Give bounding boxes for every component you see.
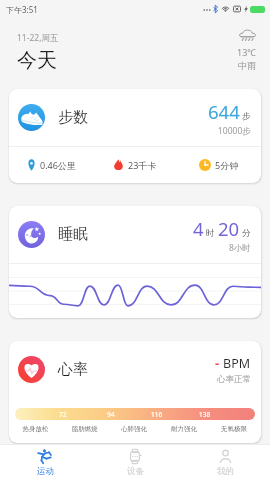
button[interactable]: 步数 [18, 89, 251, 146]
staticText: 今天 [17, 48, 57, 73]
staticText: 耐力强化 [159, 425, 209, 433]
button[interactable]: 23千卡 [93, 147, 177, 183]
button[interactable]: Profile [180, 445, 270, 480]
staticText: 时 [206, 228, 215, 239]
staticText: 72 [59, 410, 67, 419]
staticText: 无氧极限 [209, 425, 259, 433]
staticText: 运动 [37, 466, 54, 477]
staticText: 138 [199, 410, 211, 419]
staticText: 20 [218, 216, 240, 241]
staticText: 中雨 [238, 60, 256, 71]
button[interactable]: Device [90, 445, 180, 480]
staticText: 13℃ [237, 46, 257, 58]
staticText: 我的 [217, 466, 234, 477]
button[interactable]: 心率 [18, 341, 251, 398]
button[interactable]: 0.46公里 [9, 147, 93, 183]
other: Device [128, 449, 142, 464]
staticText: 116 [151, 410, 163, 419]
staticText: 步数 [58, 108, 88, 127]
staticText: 644 [208, 99, 240, 124]
other: Profile [218, 449, 233, 464]
staticText: 5分钟 [215, 159, 239, 171]
staticText: BPM [223, 355, 251, 372]
staticText: 设备 [127, 466, 144, 477]
staticText: 0.46公里 [40, 159, 76, 171]
button[interactable]: 5分钟 [177, 147, 261, 183]
staticText: 心率正常 [217, 374, 251, 385]
staticText: 10000步 [218, 125, 251, 137]
staticText: 4 [193, 216, 204, 241]
button[interactable]: 睡眠 [18, 206, 251, 263]
button[interactable]: Weather [237, 18, 257, 71]
staticText: 心肺强化 [109, 425, 159, 433]
staticText: 步 [242, 111, 251, 122]
staticText: 心率 [58, 360, 88, 379]
staticText: 脂肪燃烧 [60, 425, 109, 433]
staticText: 8小时 [229, 242, 251, 254]
staticText: 睡眠 [58, 225, 88, 244]
staticText: 热身放松 [11, 425, 60, 433]
staticText: - [215, 354, 220, 372]
staticText: 分 [242, 228, 251, 239]
staticText: 94 [107, 410, 115, 419]
staticText: 11-22,周五 [17, 32, 59, 44]
staticText: 23千卡 [128, 159, 157, 171]
button[interactable]: 运动 [0, 445, 90, 480]
staticText: 下午3:51 [6, 4, 38, 15]
